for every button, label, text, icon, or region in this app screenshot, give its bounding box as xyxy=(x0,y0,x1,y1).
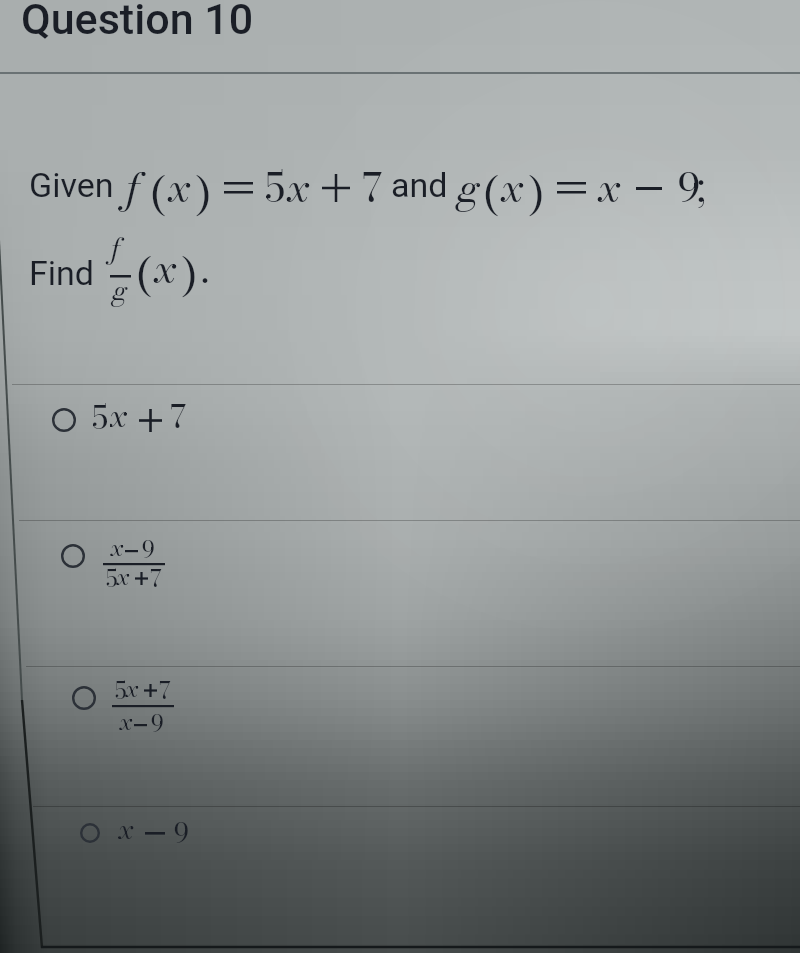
staticText: ( xyxy=(483,162,499,226)
button[interactable]: Answer option x minus 9 xyxy=(74,817,106,849)
staticText: x xyxy=(599,157,621,218)
staticText: ) xyxy=(182,243,198,307)
staticText: x xyxy=(288,157,310,218)
button[interactable]: 5 xyxy=(86,392,198,440)
staticText: ( xyxy=(150,162,166,226)
button[interactable]: x xyxy=(112,806,212,850)
staticText: f xyxy=(111,228,121,269)
staticText: 9 xyxy=(142,532,155,567)
staticText: f xyxy=(126,157,140,218)
staticText: x xyxy=(120,704,133,739)
staticText: Find xyxy=(29,253,95,293)
staticText: 5 xyxy=(106,561,118,596)
button[interactable]: Answer option x minus 9 over 5x plus 7 xyxy=(55,538,91,574)
staticText: 7 xyxy=(362,157,383,218)
staticText: x xyxy=(111,530,124,565)
staticText: 5 xyxy=(265,157,285,218)
staticText: Given xyxy=(29,165,114,205)
staticText: . xyxy=(201,238,209,299)
staticText: x xyxy=(126,671,139,706)
staticText: and xyxy=(391,165,448,205)
staticText: x xyxy=(502,157,524,218)
staticText: x xyxy=(169,157,191,218)
staticText: g xyxy=(112,270,128,311)
staticText: 9 xyxy=(678,157,701,218)
staticText: x xyxy=(110,391,127,439)
staticText: g xyxy=(457,157,481,218)
staticText: 7 xyxy=(159,673,171,708)
button[interactable]: x xyxy=(100,528,180,592)
staticText: ) xyxy=(529,162,545,226)
staticText: 9 xyxy=(174,813,190,854)
button[interactable]: Answer option 5x plus 7 over x minus 9 xyxy=(66,680,102,716)
staticText: 7 xyxy=(170,392,187,440)
staticText: x xyxy=(117,559,130,594)
staticText: Question 10 xyxy=(21,0,254,44)
button[interactable]: 5 xyxy=(109,670,189,734)
staticText: ( xyxy=(136,243,152,307)
staticText: x xyxy=(119,809,134,850)
staticText: 5 xyxy=(92,393,109,441)
staticText: ) xyxy=(196,162,212,226)
staticText: x xyxy=(155,238,177,299)
staticText: 9 xyxy=(151,706,164,741)
button[interactable]: Answer option 5x + 7 xyxy=(46,402,82,438)
staticText: 7 xyxy=(150,561,162,596)
staticText: 5 xyxy=(115,673,127,708)
staticText: ; xyxy=(697,157,706,218)
